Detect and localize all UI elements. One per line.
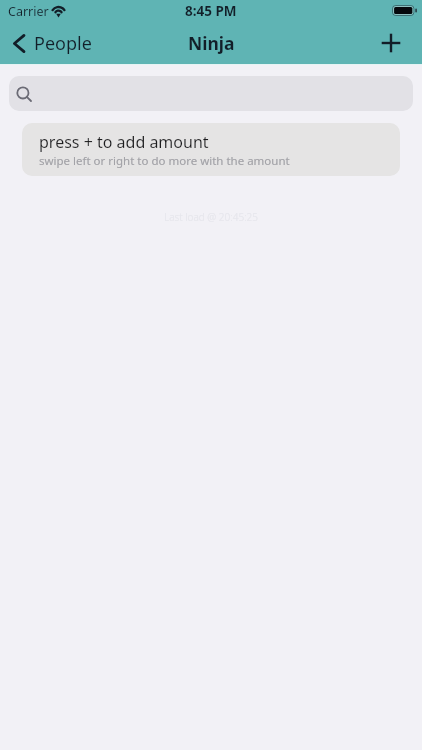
staticText: Ninja — [188, 31, 235, 55]
staticText: People — [34, 31, 92, 56]
button[interactable] — [9, 76, 413, 111]
staticText: Carrier — [8, 3, 49, 20]
button[interactable]: People — [0, 25, 100, 62]
button[interactable]: Add — [376, 28, 406, 58]
staticText: press + to add amount — [39, 131, 209, 153]
staticText: 8:45 PM — [185, 2, 237, 20]
staticText: swipe left or right to do more with the … — [39, 153, 290, 169]
button[interactable]: press + to add amount — [22, 123, 400, 176]
